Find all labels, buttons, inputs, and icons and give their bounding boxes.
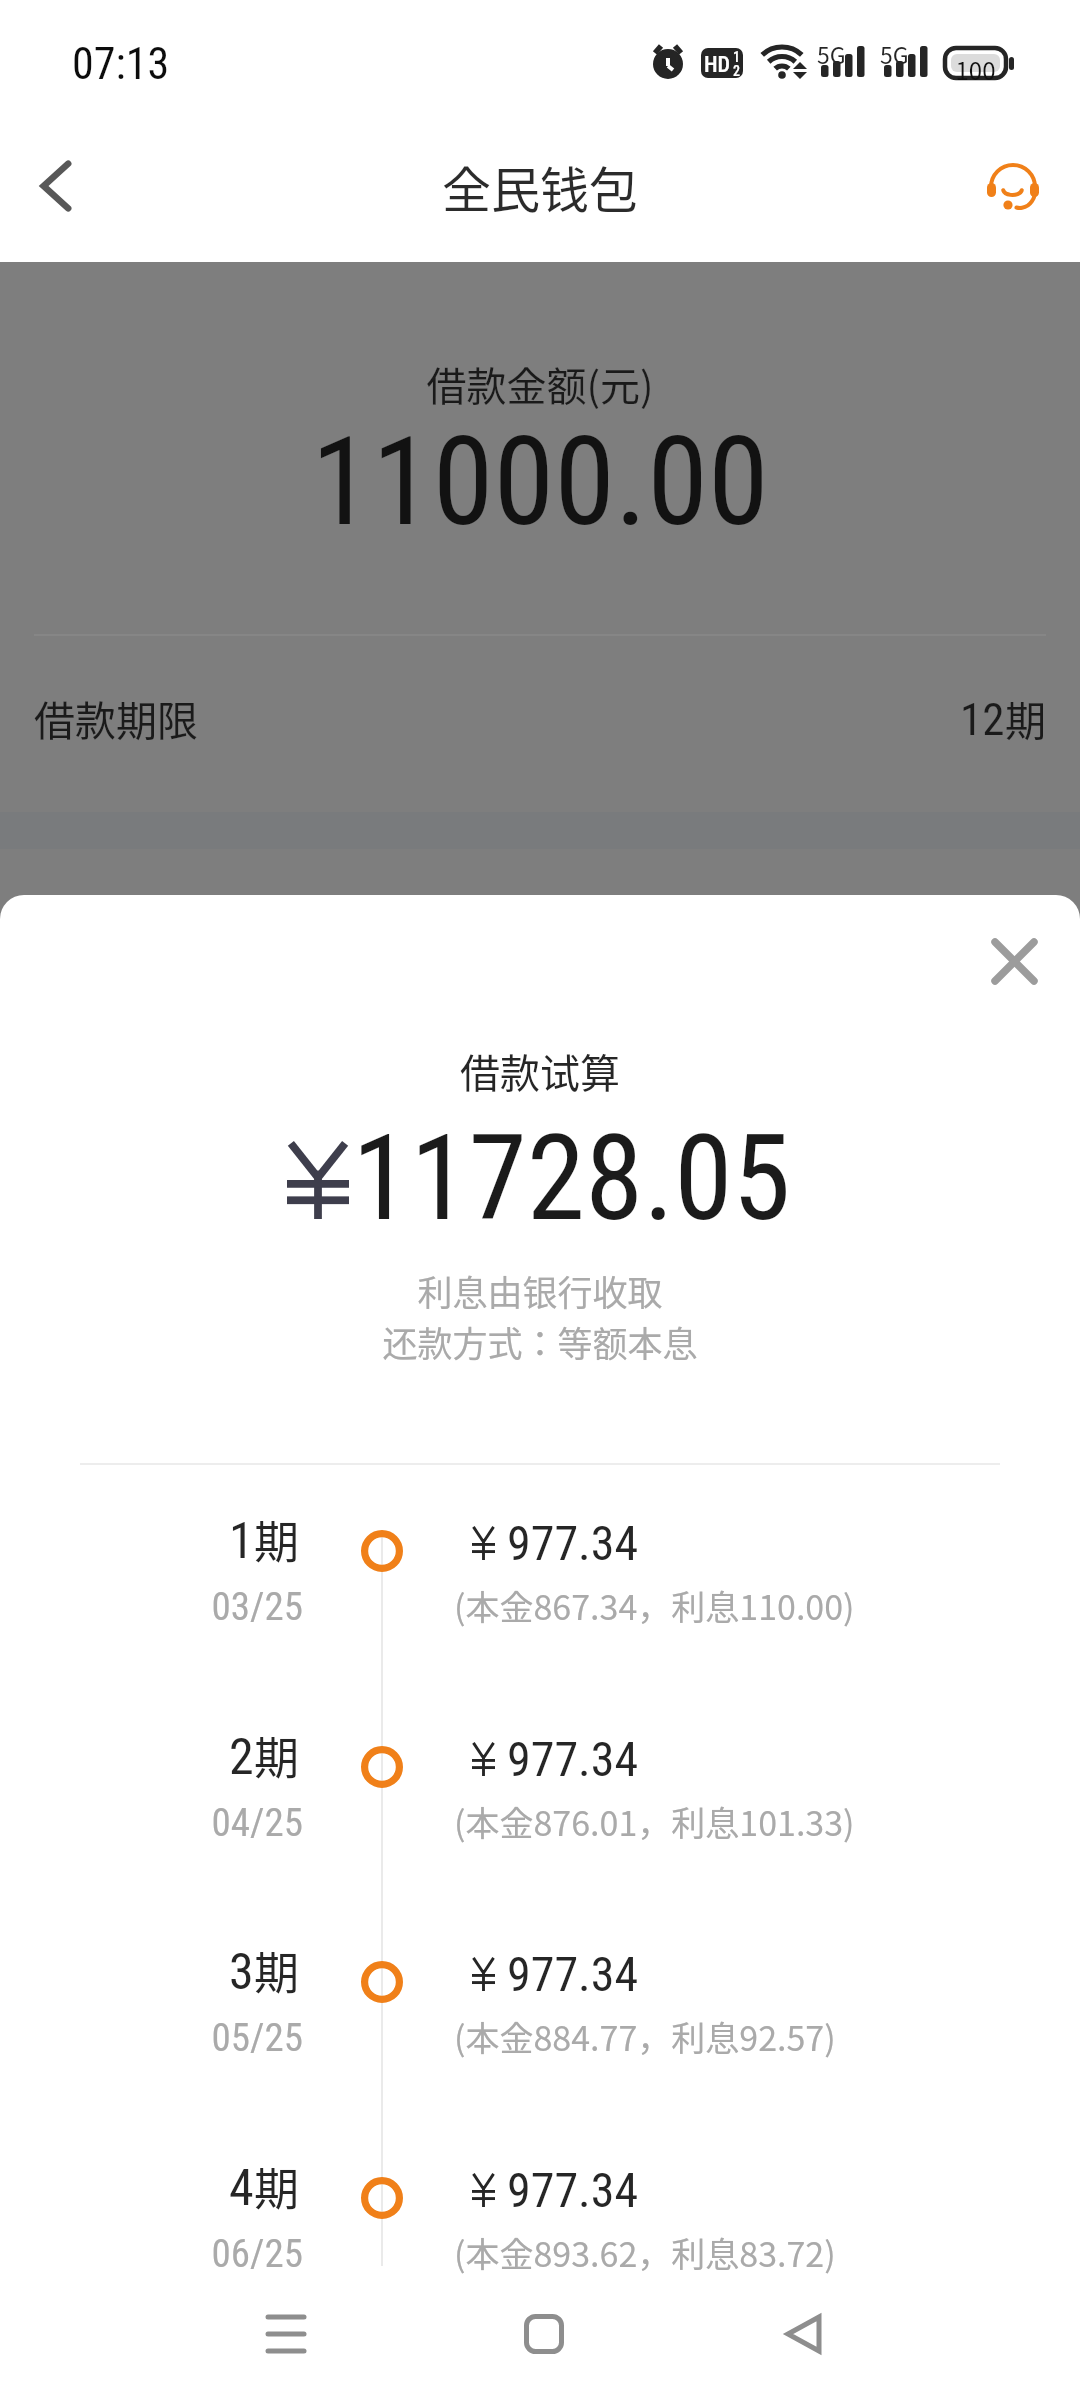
staticText: 借款期限: [34, 688, 198, 747]
staticText: 2: [229, 1728, 254, 1787]
staticText: (本金893.62，利息83.72): [454, 2228, 836, 2277]
staticText: 100: [945, 52, 1006, 87]
staticText: 977.34: [507, 1946, 639, 2002]
staticText: 05/25: [0, 2015, 303, 2061]
staticText: 利息由银行收取: [0, 1265, 1080, 1316]
staticText: 借款金额(元): [0, 355, 1080, 413]
staticText: 4: [229, 2159, 254, 2218]
staticText: 全民钱包: [442, 151, 639, 222]
button[interactable]: 4: [0, 2143, 1080, 2258]
staticText: (本金867.34，利息110.00): [454, 1581, 855, 1630]
staticText: 3: [229, 1943, 254, 2002]
button[interactable]: 1: [0, 1496, 1080, 1611]
button[interactable]: 3: [0, 1927, 1080, 2042]
staticText: 期: [254, 2154, 300, 2219]
button[interactable]: Close: [964, 911, 1064, 1011]
staticText: 1: [733, 49, 741, 65]
staticText: 12: [960, 693, 1005, 746]
button[interactable]: Customer service: [967, 136, 1067, 236]
staticText: (本金884.77，利息92.57): [454, 2012, 836, 2061]
button[interactable]: 2: [0, 1712, 1080, 1827]
staticText: 期: [254, 1938, 300, 2003]
staticText: 977.34: [507, 1731, 639, 1787]
button[interactable]: Back: [2, 131, 112, 241]
staticText: 977.34: [507, 1515, 639, 1571]
button[interactable]: Recent apps: [226, 2274, 346, 2394]
staticText: (本金876.01，利息101.33): [454, 1797, 855, 1846]
staticText: 11728.05: [352, 1110, 791, 1248]
staticText: 11000.00: [0, 410, 1080, 554]
staticText: 期: [254, 1507, 300, 1572]
staticText: 2: [733, 63, 741, 78]
button[interactable]: Back: [742, 2274, 862, 2394]
staticText: HD: [704, 52, 731, 78]
staticText: 5G: [817, 37, 846, 70]
staticText: 期: [1005, 688, 1046, 747]
staticText: 04/25: [0, 1800, 303, 1846]
staticText: 借款试算: [0, 1042, 1080, 1100]
button[interactable]: Home: [484, 2274, 604, 2394]
staticText: 5G: [880, 37, 909, 70]
staticText: 07:13: [72, 38, 170, 90]
staticText: 还款方式：等额本息: [0, 1316, 1080, 1367]
staticText: 03/25: [0, 1584, 303, 1630]
staticText: 1: [229, 1512, 254, 1571]
staticText: 977.34: [507, 2162, 639, 2218]
staticText: 06/25: [0, 2231, 303, 2277]
staticText: 期: [254, 1723, 300, 1788]
